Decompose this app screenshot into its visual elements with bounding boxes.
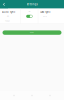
staticText: Sync xyxy=(30,32,34,33)
button[interactable]: Sync xyxy=(2,30,61,35)
staticText: Settings xyxy=(26,2,37,6)
staticText: Today xyxy=(5,20,10,22)
button[interactable]: Wi-Fi only xyxy=(26,15,33,18)
staticText: Last sync xyxy=(40,10,50,14)
staticText: Auto sync xyxy=(2,10,15,14)
button[interactable]: Back xyxy=(0,0,8,9)
staticText: On xyxy=(7,15,9,17)
staticText: Wi-Fi xyxy=(28,11,30,13)
staticText: 09:14 xyxy=(43,15,47,17)
